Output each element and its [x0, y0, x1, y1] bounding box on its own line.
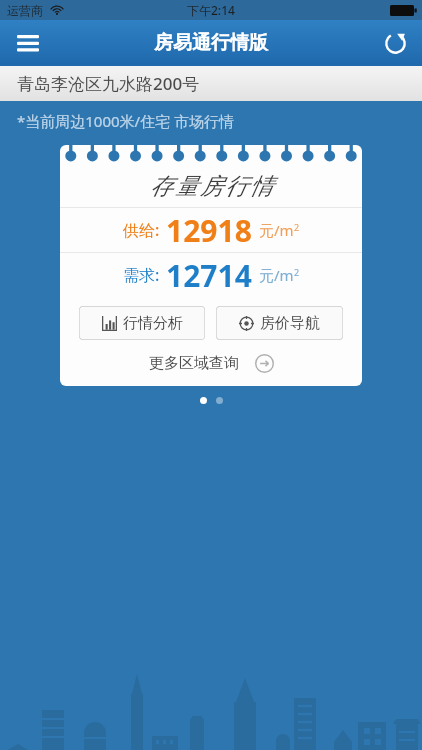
- staticText: 更多区域查询: [149, 354, 239, 373]
- button[interactable]: 行情分析: [79, 306, 205, 340]
- staticText: 运营商: [7, 3, 43, 18]
- staticText: *当前周边1000米/住宅 市场行情: [17, 111, 235, 131]
- button[interactable]: 房价导航: [216, 306, 343, 340]
- button[interactable]: [200, 397, 207, 404]
- staticText: 元/m: [259, 220, 294, 240]
- button[interactable]: 青岛李沧区九水路200号: [0, 66, 422, 101]
- staticText: 2: [294, 266, 300, 278]
- button[interactable]: Menu: [0, 20, 56, 66]
- staticText: 12714: [166, 255, 252, 296]
- staticText: 青岛李沧区九水路200号: [17, 72, 200, 95]
- button[interactable]: Refresh: [368, 20, 422, 66]
- staticText: 存量房行情: [149, 172, 274, 201]
- staticText: 元/m: [259, 265, 294, 285]
- staticText: 行情分析: [123, 314, 183, 333]
- staticText: 需求:: [123, 264, 160, 286]
- staticText: 12918: [166, 210, 252, 251]
- staticText: 供给:: [123, 219, 160, 241]
- button[interactable]: 更多区域查询: [60, 351, 362, 376]
- staticText: 下午2:14: [187, 2, 235, 18]
- staticText: 2: [294, 221, 300, 233]
- staticText: 房易通行情版: [154, 31, 268, 55]
- staticText: 房价导航: [260, 314, 320, 333]
- button[interactable]: [216, 397, 223, 404]
